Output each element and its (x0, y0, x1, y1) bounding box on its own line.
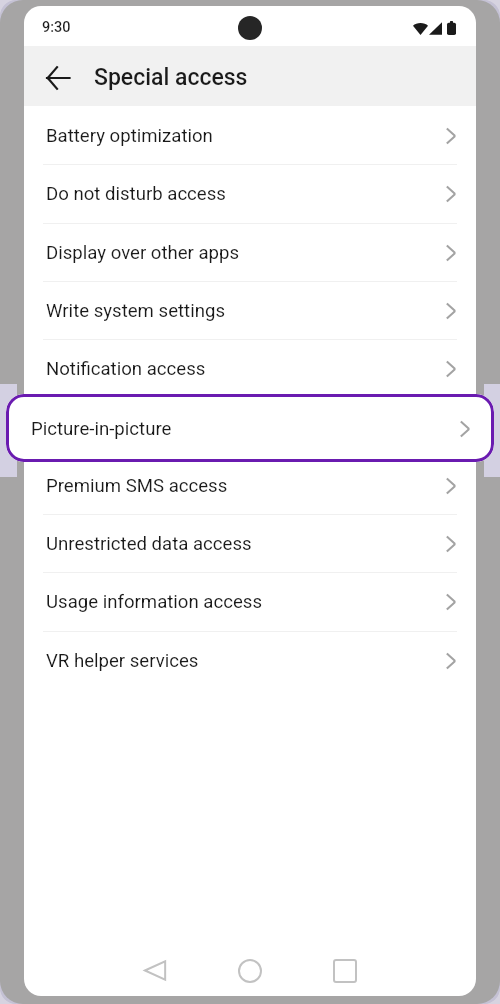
staticText: Special access (94, 64, 248, 91)
button[interactable]: Back (129, 945, 181, 996)
button[interactable]: Back (24, 46, 82, 106)
button[interactable]: VR helper services (24, 631, 476, 689)
button[interactable]: Display over other apps (24, 223, 476, 281)
staticText: Do not disturb access (46, 183, 226, 205)
button[interactable]: Usage information access (24, 572, 476, 630)
staticText: Unrestricted data access (46, 533, 252, 555)
staticText: Notification access (46, 358, 206, 380)
staticText: Premium SMS access (46, 475, 228, 497)
button[interactable]: Notification access (24, 339, 476, 397)
staticText: Display over other apps (46, 242, 240, 264)
staticText: Write system settings (46, 300, 225, 322)
button[interactable]: Picture-in-picture (6, 394, 494, 462)
button[interactable]: Home (224, 945, 276, 996)
staticText: Usage information access (46, 591, 262, 613)
staticText: VR helper services (46, 650, 199, 672)
staticText: Picture-in-picture (31, 418, 172, 440)
button[interactable]: Recents (319, 945, 371, 996)
staticText: 9:30 (42, 19, 71, 36)
button[interactable]: Write system settings (24, 281, 476, 339)
button[interactable]: Battery optimization (24, 106, 476, 164)
staticText: Battery optimization (46, 125, 213, 147)
button[interactable]: Premium SMS access (24, 456, 476, 514)
button[interactable]: Do not disturb access (24, 164, 476, 222)
button[interactable]: Unrestricted data access (24, 514, 476, 572)
